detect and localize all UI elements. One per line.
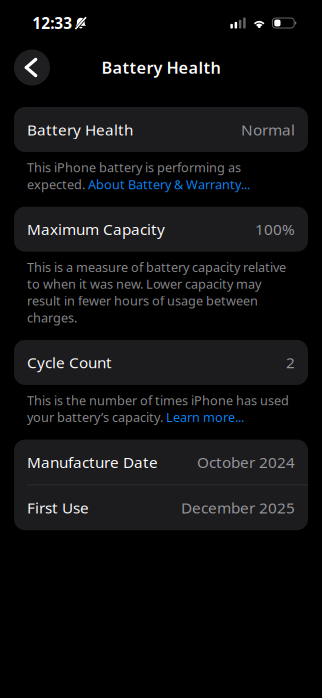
staticText: Normal <box>241 120 295 139</box>
staticText: Battery Health <box>27 120 133 139</box>
staticText: This iPhone battery is performing as exp… <box>27 159 250 193</box>
staticText: This is a measure of battery capacity re… <box>27 259 286 326</box>
button[interactable]: Back <box>14 49 50 85</box>
staticText: October 2024 <box>197 452 295 472</box>
staticText: 2 <box>286 353 295 372</box>
staticText: Cycle Count <box>27 353 112 372</box>
button[interactable]: Maximum Capacity <box>14 207 308 252</box>
button[interactable]: Cycle Count <box>14 340 308 385</box>
staticText: Battery Health <box>101 57 220 78</box>
staticText: First Use <box>27 498 89 518</box>
staticText: This is the number of times iPhone has u… <box>27 392 289 425</box>
button[interactable]: First Use <box>14 485 308 530</box>
staticText: 100% <box>255 219 295 239</box>
button[interactable]: Battery Health <box>14 107 308 152</box>
staticText: Manufacture Date <box>27 452 158 472</box>
staticText: 12:33 <box>32 13 72 33</box>
staticText: Maximum Capacity <box>27 219 165 239</box>
staticText: December 2025 <box>181 498 295 518</box>
button[interactable]: Manufacture Date <box>14 440 308 485</box>
